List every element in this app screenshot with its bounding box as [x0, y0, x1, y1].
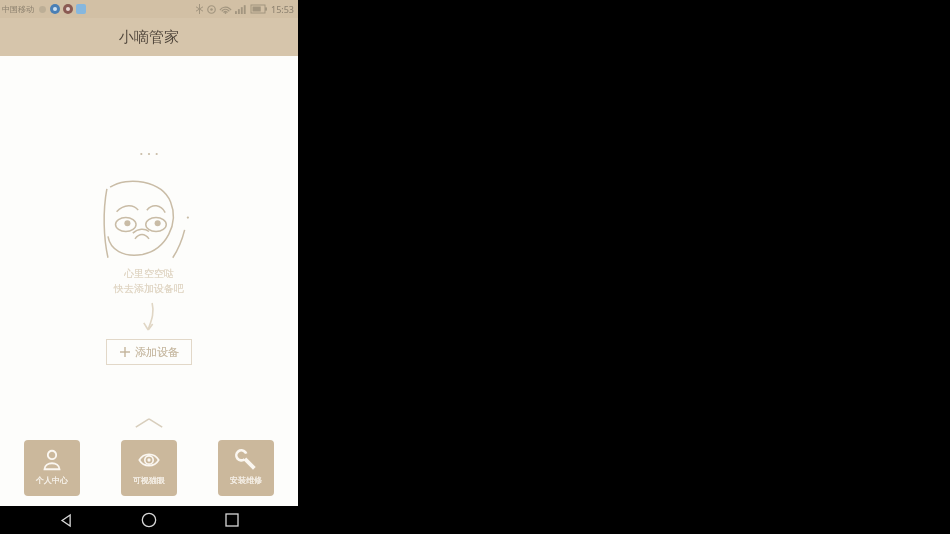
button[interactable]: Back [49, 506, 83, 534]
button[interactable]: Expand [129, 414, 169, 432]
button[interactable]: Video peephole [121, 440, 177, 496]
staticText: 15:53 [271, 3, 295, 15]
button[interactable]: 添加设备 [106, 339, 192, 365]
button[interactable]: Install and repair [218, 440, 274, 496]
staticText: 快去添加设备吧 [114, 282, 184, 295]
button[interactable]: Home [132, 506, 166, 534]
staticText: 中国移动 [2, 4, 34, 14]
staticText: 可视猫眼 [133, 475, 165, 485]
staticText: 心里空空哒 [124, 267, 174, 280]
button[interactable]: Recent apps [215, 506, 249, 534]
button[interactable]: Personal center [24, 440, 80, 496]
staticText: 小嘀管家 [119, 28, 179, 47]
staticText: 安装维修 [230, 475, 262, 485]
staticText: 个人中心 [36, 475, 68, 485]
staticText: 添加设备 [135, 345, 179, 359]
